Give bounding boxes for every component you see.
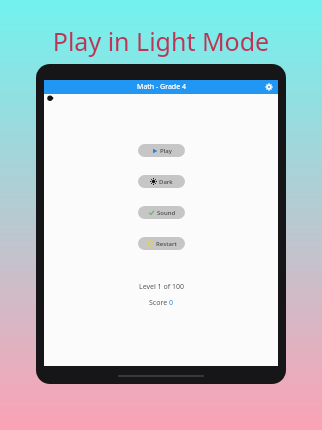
button[interactable]: Play xyxy=(138,144,185,157)
button[interactable]: Settings xyxy=(264,82,274,92)
button[interactable]: Sound xyxy=(138,206,185,219)
staticText: Restart xyxy=(156,240,177,248)
staticText: Level 1 of 100 xyxy=(139,282,184,292)
staticText: Dark xyxy=(159,178,173,186)
staticText: Math - Grade 4 xyxy=(137,82,186,92)
staticText: Sound xyxy=(157,209,176,217)
staticText: Play in Light Mode xyxy=(0,24,322,58)
staticText: 0 xyxy=(169,298,174,308)
staticText: Score xyxy=(149,298,169,308)
staticText: Play xyxy=(160,147,172,155)
button[interactable]: Restart xyxy=(138,237,185,250)
button[interactable]: Dark xyxy=(138,175,185,188)
